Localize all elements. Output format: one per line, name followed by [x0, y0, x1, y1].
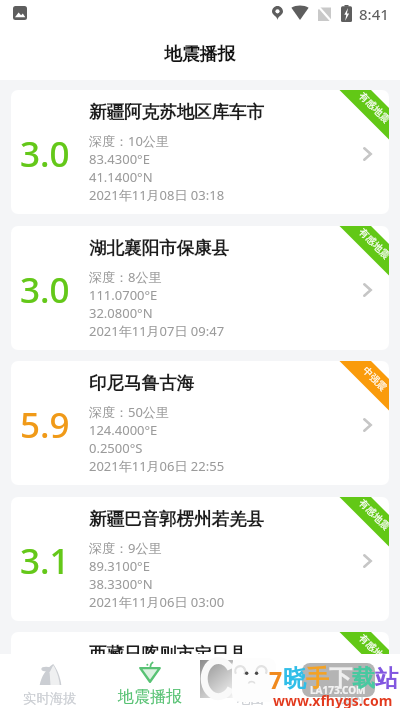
staticText: 41.1400°N: [89, 168, 153, 186]
staticText: 晓: [283, 664, 306, 693]
staticText: 地震播报: [118, 687, 182, 707]
staticText: 3.1: [20, 537, 70, 585]
button[interactable]: 实时海拔: [0, 654, 100, 708]
staticText: 2021年11月06日 22:55: [89, 457, 225, 475]
staticText: 83.4300°E: [89, 150, 150, 168]
staticText: 我的: [337, 690, 364, 707]
staticText: 3.0: [20, 130, 70, 178]
other: 详情: [363, 554, 372, 568]
staticText: www.xfhygs.com: [273, 691, 393, 708]
staticText: 124.4000°E: [89, 421, 158, 439]
other: 详情: [363, 283, 372, 297]
button[interactable]: 3.1: [11, 497, 389, 621]
staticText: 有感地震: [356, 632, 389, 654]
other: 详情: [363, 147, 372, 161]
staticText: 载: [352, 664, 375, 693]
staticText: 0.2500°S: [89, 439, 143, 457]
staticText: 2021年11月06日 03:00: [89, 593, 225, 611]
button[interactable]: 我的: [300, 654, 400, 708]
staticText: 有感地震: [356, 226, 389, 262]
button[interactable]: 3.0: [11, 226, 389, 350]
staticText: 有感地震: [356, 90, 389, 126]
staticText: 深度：9公里: [89, 539, 162, 557]
staticText: 印尼马鲁古海: [89, 372, 194, 394]
staticText: 站: [375, 664, 398, 693]
staticText: 实时海拔: [23, 690, 77, 707]
staticText: 38.3300°N: [89, 575, 153, 593]
staticText: 2021年11月08日 03:18: [89, 186, 225, 204]
button[interactable]: 3.3: [11, 632, 389, 654]
button[interactable]: 地图: [200, 654, 300, 708]
staticText: 深度：8公里: [89, 268, 162, 286]
staticText: 西藏日喀则市定日县: [89, 643, 247, 654]
staticText: 下: [329, 664, 352, 693]
staticText: 湖北襄阳市保康县: [89, 237, 229, 259]
staticText: LA173.COM: [310, 683, 366, 697]
staticText: 手: [306, 664, 329, 693]
staticText: 深度：50公里: [89, 403, 169, 421]
staticText: 8:41: [359, 4, 389, 24]
staticText: 32.0800°N: [89, 304, 153, 322]
staticText: 中强震: [360, 364, 389, 393]
staticText: 5.9: [20, 401, 70, 449]
button[interactable]: 3.0: [11, 90, 389, 214]
staticText: 7: [269, 664, 283, 695]
staticText: 地震播报: [164, 43, 236, 65]
staticText: 111.0700°E: [89, 286, 158, 304]
staticText: 89.3100°E: [89, 557, 150, 575]
other: 详情: [363, 418, 372, 432]
staticText: 地图: [237, 690, 264, 707]
staticText: 有感地震: [356, 497, 389, 533]
button[interactable]: 5.9: [11, 361, 389, 485]
staticText: 2021年11月07日 09:47: [89, 322, 225, 340]
staticText: 3.0: [20, 266, 70, 314]
button[interactable]: 地震播报: [100, 654, 200, 708]
staticText: 新疆巴音郭楞州若羌县: [89, 508, 264, 530]
staticText: 深度：10公里: [89, 132, 169, 150]
staticText: 新疆阿克苏地区库车市: [89, 101, 264, 123]
